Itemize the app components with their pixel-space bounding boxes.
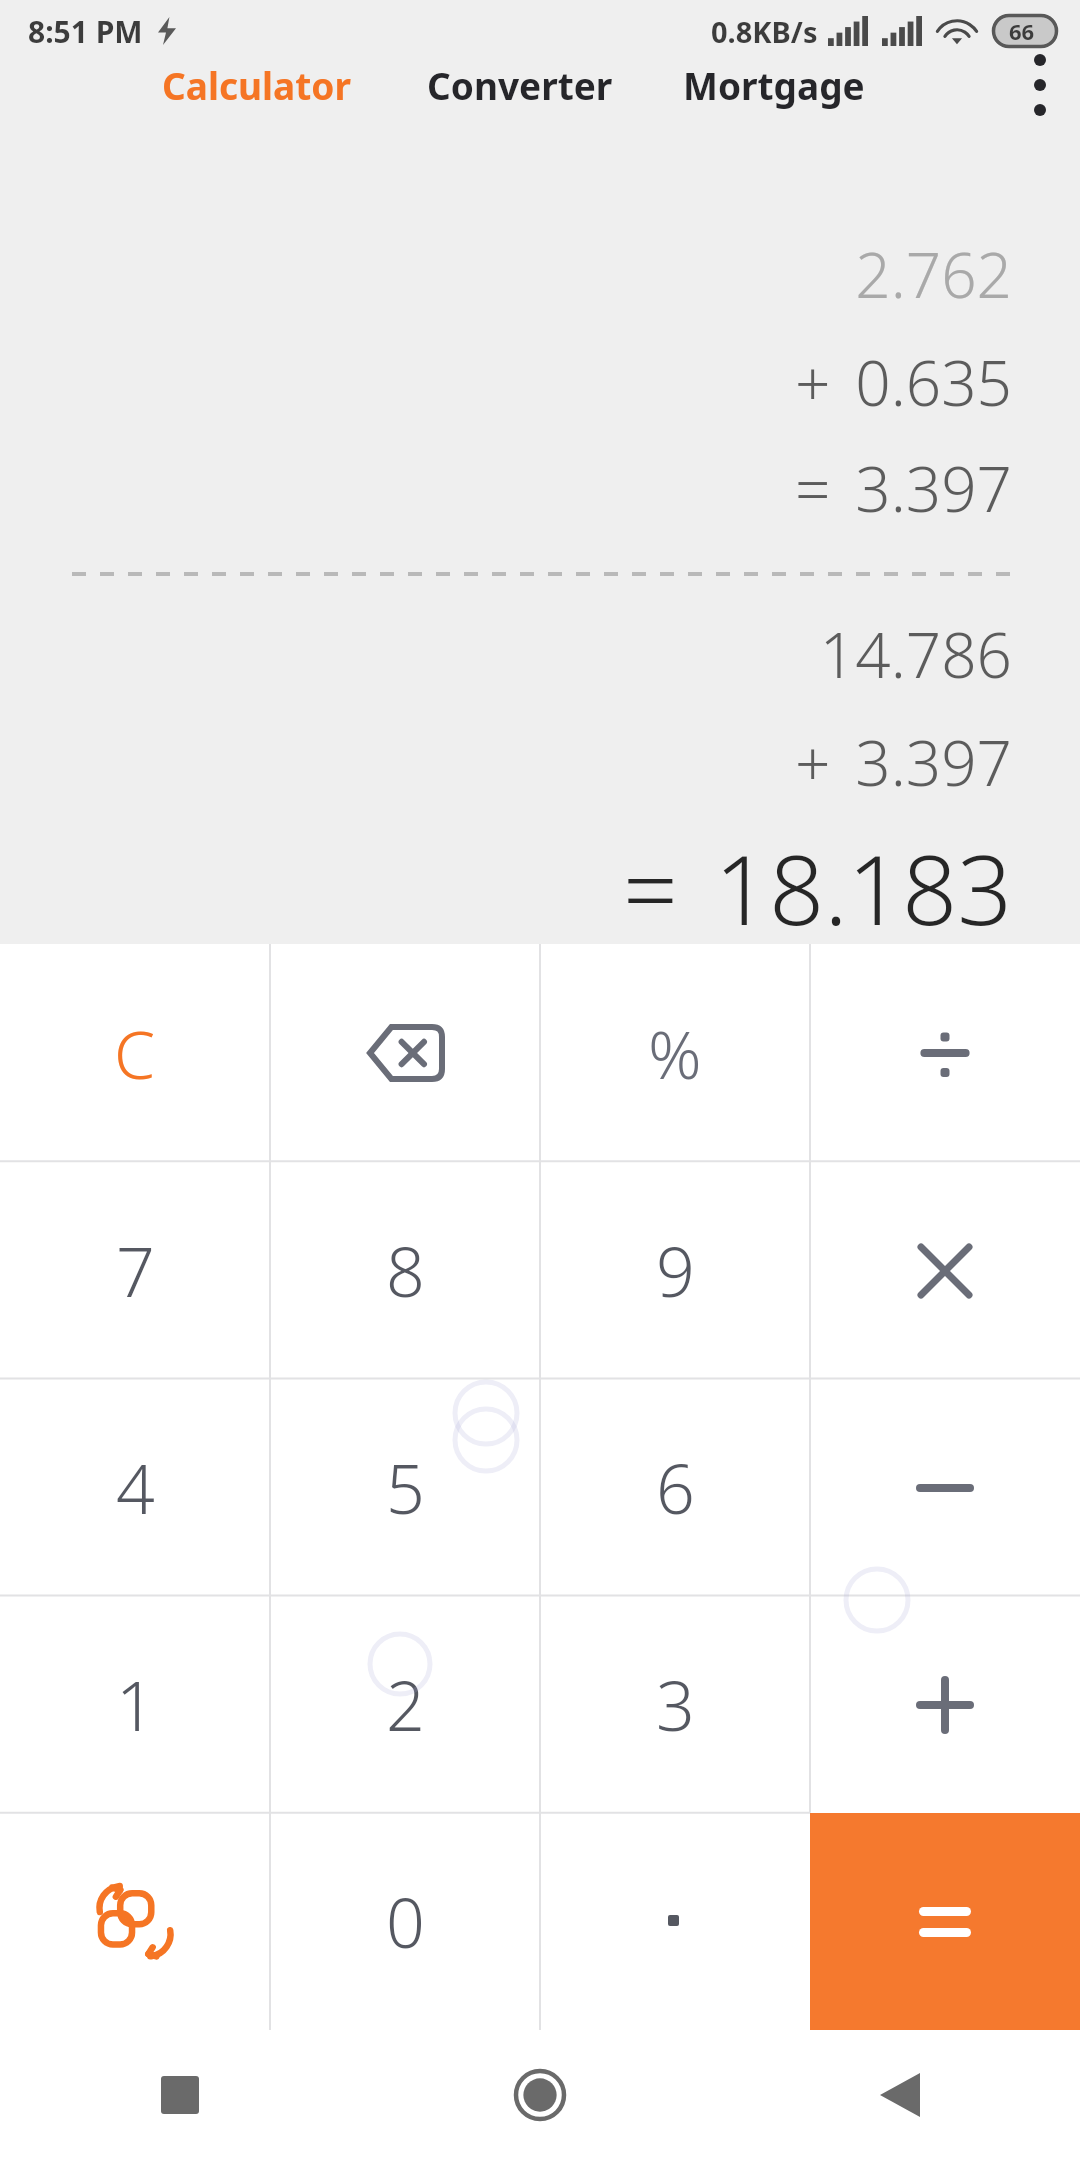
button[interactable]: 0 [270,1813,540,2030]
button[interactable]: Convert [0,1813,270,2030]
button[interactable]: 9 [540,1162,810,1379]
staticText: 4 [116,1441,155,1534]
staticText: 3.397 [855,446,1012,530]
button[interactable]: Minus [810,1379,1080,1596]
staticText: 9 [656,1224,695,1317]
button[interactable]: More options [1000,30,1080,140]
staticText: % [648,1008,702,1098]
button[interactable]: 6 [540,1379,810,1596]
staticText: 1 [116,1658,155,1751]
staticText: + [795,720,831,804]
button[interactable]: 7 [0,1162,270,1379]
staticText: 14.786 [819,612,1012,696]
staticText: 66 [1009,16,1035,46]
staticText: 2.762 [855,232,1012,316]
staticText: + [795,340,831,424]
staticText: Calculator [162,60,351,110]
button[interactable]: 8 [270,1162,540,1379]
staticText: Mortgage [683,60,865,110]
staticText: = [623,822,678,944]
button[interactable]: 5 [270,1379,540,1596]
button[interactable]: Backspace [270,944,540,1162]
staticText: 8:51 PM [28,11,143,52]
staticText: 18.183 [714,822,1012,944]
button[interactable]: Recents [0,2030,360,2160]
staticText: 0 [386,1875,425,1968]
button[interactable]: C [0,944,270,1162]
staticText: 2 [386,1658,425,1751]
staticText: 6 [656,1441,695,1534]
button[interactable] [540,1813,810,2030]
button[interactable]: 3 [540,1596,810,1813]
staticText: 7 [116,1224,155,1317]
button[interactable]: Plus [810,1596,1080,1813]
button[interactable]: Equals [810,1813,1080,2030]
staticText: = [795,446,831,530]
button[interactable]: Divide [810,944,1080,1162]
staticText: 0.635 [855,340,1012,424]
button[interactable]: 1 [0,1596,270,1813]
button[interactable]: 4 [0,1379,270,1596]
staticText: Converter [427,60,613,110]
button[interactable]: 2 [270,1596,540,1813]
button[interactable]: Mortgage [671,50,877,120]
staticText: 8 [386,1224,425,1317]
button[interactable]: Multiply [810,1162,1080,1379]
button[interactable]: Calculator [150,50,363,120]
staticText: 3 [656,1658,695,1751]
button[interactable]: Home [360,2030,720,2160]
staticText: C [114,1008,156,1098]
staticText: 5 [386,1441,425,1534]
button[interactable]: Converter [415,50,625,120]
button[interactable]: Back [720,2030,1080,2160]
staticText: 3.397 [855,720,1012,804]
button[interactable]: % [540,944,810,1162]
staticText: 0.8KB/s [711,12,818,51]
